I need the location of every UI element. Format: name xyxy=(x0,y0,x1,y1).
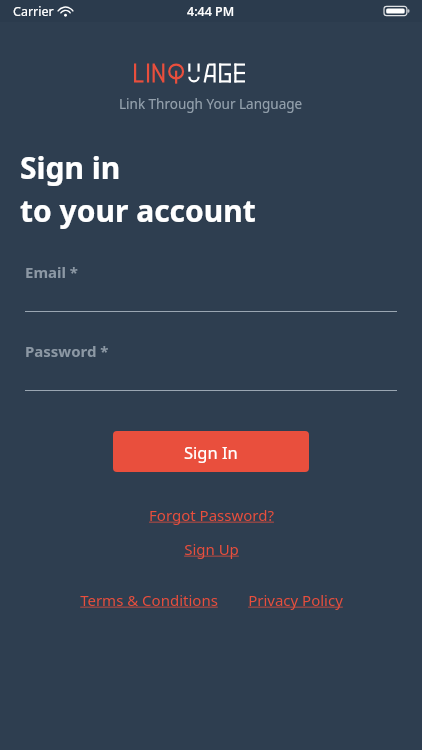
button[interactable]: Password * xyxy=(25,341,397,391)
staticText: Privacy Policy xyxy=(248,590,343,610)
staticText: Link Through Your Language xyxy=(119,95,303,113)
staticText: Sign In xyxy=(184,441,238,463)
staticText: Carrier xyxy=(13,3,54,20)
staticText: Sign in xyxy=(20,147,121,188)
staticText: 4:44 PM xyxy=(187,3,235,20)
button[interactable]: Privacy Policy xyxy=(248,590,343,610)
other: Linquage logo xyxy=(134,59,289,87)
button[interactable]: Terms & Conditions xyxy=(80,590,218,610)
button[interactable]: Forgot Password? xyxy=(149,505,274,525)
staticText: Terms & Conditions xyxy=(80,590,218,610)
button[interactable]: Email * xyxy=(25,262,397,312)
staticText: to your account xyxy=(20,190,256,231)
staticText: Password * xyxy=(25,341,109,361)
button[interactable]: Sign In xyxy=(113,431,309,472)
staticText: Email * xyxy=(25,262,78,282)
staticText: Forgot Password? xyxy=(149,505,274,525)
button[interactable]: Sign Up xyxy=(184,539,239,559)
staticText: Sign Up xyxy=(184,539,239,559)
